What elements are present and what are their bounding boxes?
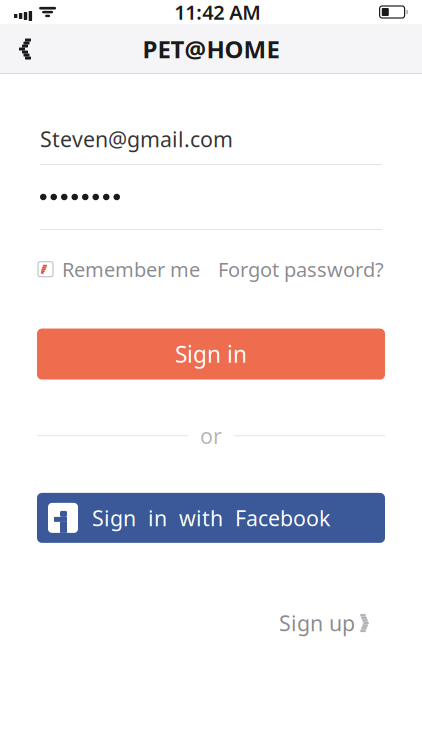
staticText: Sign up [279, 609, 355, 637]
staticText: Sign in with Facebook [92, 504, 330, 532]
button[interactable]: Back [0, 24, 54, 74]
staticText: Steven@gmail.com [40, 125, 233, 153]
button[interactable]: Sign up [279, 601, 373, 645]
staticText: or [200, 422, 222, 450]
button[interactable]: Forgot password? [218, 248, 384, 291]
button[interactable]: Steven@gmail.com [32, 114, 390, 165]
button[interactable]: Sign in with Facebook [37, 493, 385, 543]
button[interactable]: Sign in [37, 329, 385, 380]
staticText: 11:42 AM [174, 0, 261, 25]
button[interactable] [32, 165, 390, 230]
staticText: Remember me [62, 256, 200, 283]
button[interactable]: Remember me [38, 248, 200, 291]
staticText: Forgot password? [218, 256, 384, 283]
staticText: PET@HOME [142, 33, 279, 65]
staticText: Sign in [175, 339, 247, 369]
